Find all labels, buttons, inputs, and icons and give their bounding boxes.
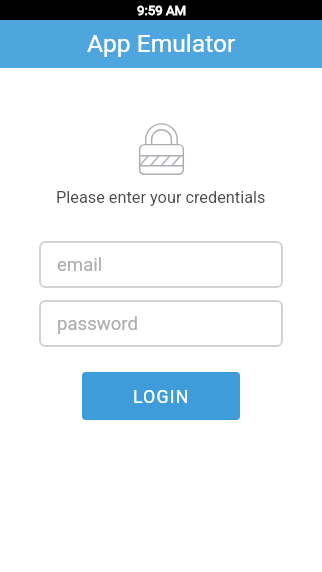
button[interactable]: email (39, 241, 283, 288)
staticText: password (57, 313, 138, 335)
other: Secure login (139, 123, 184, 175)
staticText: 9:59 AM (137, 3, 187, 19)
button[interactable]: password (39, 300, 283, 347)
staticText: LOGIN (133, 386, 190, 407)
button[interactable]: LOGIN (82, 372, 240, 420)
staticText: App Emulator (87, 29, 236, 58)
staticText: Please enter your credentials (56, 188, 266, 207)
staticText: email (57, 254, 103, 276)
